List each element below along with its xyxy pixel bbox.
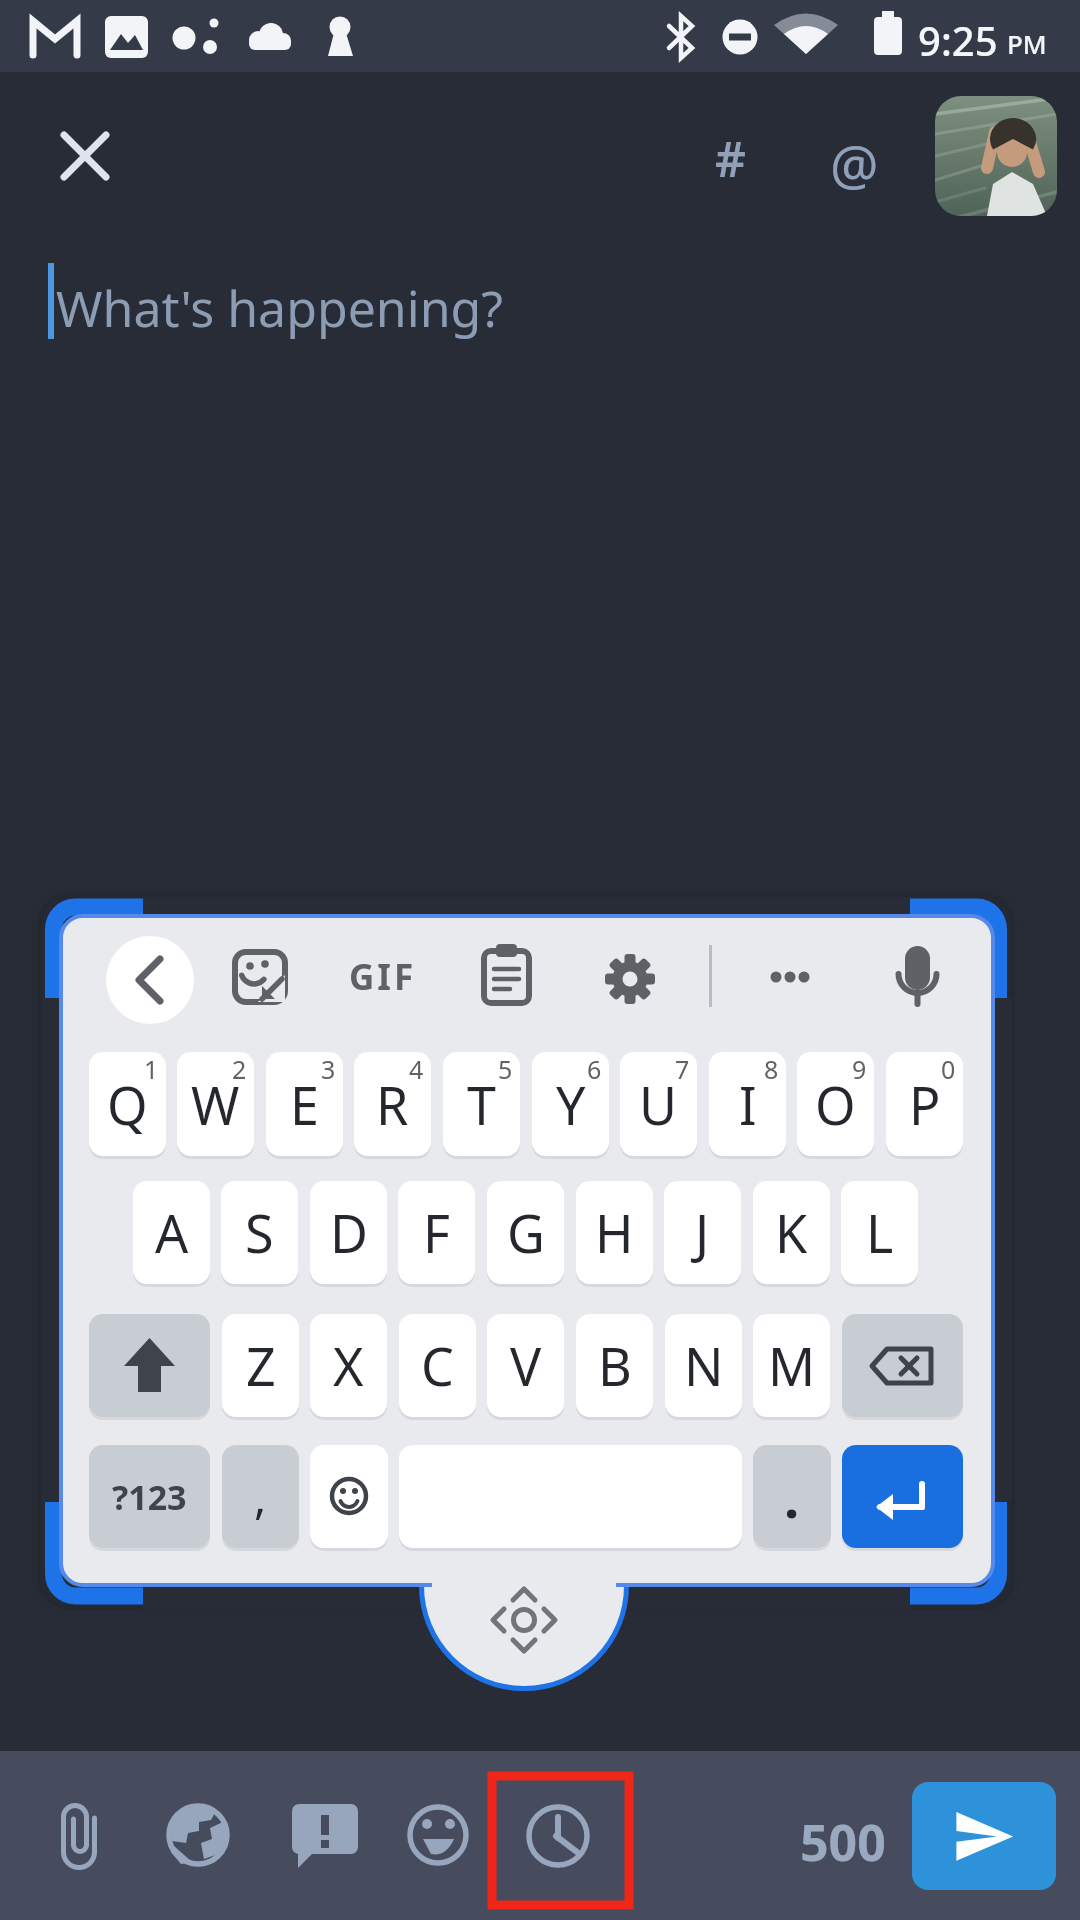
button[interactable]: GIF xyxy=(340,942,426,1012)
button[interactable]: Z xyxy=(222,1314,299,1417)
button[interactable] xyxy=(45,1800,115,1872)
staticText: D xyxy=(330,1197,368,1268)
staticText: S xyxy=(245,1197,274,1268)
button[interactable] xyxy=(523,1800,593,1872)
button[interactable]: O xyxy=(797,1052,874,1156)
button[interactable]: X xyxy=(310,1314,387,1417)
staticText: B xyxy=(598,1330,632,1401)
button[interactable]: J xyxy=(664,1181,741,1284)
button[interactable]: G xyxy=(487,1181,564,1284)
staticText: 4 xyxy=(409,1052,424,1086)
button[interactable] xyxy=(842,1445,963,1548)
button[interactable] xyxy=(595,942,665,1012)
staticText: What's happening? xyxy=(56,274,503,342)
button[interactable] xyxy=(882,942,952,1012)
staticText: X xyxy=(333,1330,364,1401)
button[interactable] xyxy=(163,1800,233,1872)
button[interactable]: B xyxy=(576,1314,653,1417)
button[interactable]: D xyxy=(310,1181,387,1284)
staticText: I xyxy=(739,1069,757,1140)
staticText: C xyxy=(421,1330,454,1401)
staticText: U xyxy=(639,1069,678,1140)
staticText: O xyxy=(815,1069,856,1140)
staticText: PM xyxy=(1007,26,1047,61)
button[interactable]: , xyxy=(222,1445,299,1548)
staticText: @ xyxy=(830,127,879,201)
button[interactable]: # xyxy=(700,122,762,194)
button[interactable]: U xyxy=(620,1052,697,1156)
button[interactable]: ?123 xyxy=(89,1445,210,1548)
button[interactable]: Y xyxy=(532,1052,609,1156)
button[interactable]: H xyxy=(576,1181,653,1284)
button[interactable]: M xyxy=(753,1314,830,1417)
staticText: , xyxy=(254,1465,267,1528)
staticText: Y xyxy=(556,1069,586,1140)
button[interactable] xyxy=(403,1800,473,1872)
staticText: T xyxy=(467,1069,496,1140)
staticText: E xyxy=(290,1069,319,1140)
button[interactable] xyxy=(225,942,295,1012)
staticText: R xyxy=(376,1069,409,1140)
button[interactable]: @ xyxy=(820,126,888,202)
button[interactable]: A xyxy=(133,1181,210,1284)
staticText: P xyxy=(909,1069,941,1140)
button[interactable]: S xyxy=(221,1181,298,1284)
button[interactable]: T xyxy=(443,1052,520,1156)
staticText: 9:25 xyxy=(918,13,998,67)
button[interactable]: W xyxy=(177,1052,254,1156)
staticText: J xyxy=(695,1197,710,1268)
button[interactable] xyxy=(842,1314,963,1417)
staticText: 0 xyxy=(941,1052,956,1086)
staticText: 7 xyxy=(675,1052,690,1086)
staticText: 6 xyxy=(587,1052,602,1086)
button[interactable] xyxy=(310,1445,388,1548)
button[interactable]: E xyxy=(266,1052,343,1156)
staticText: Q xyxy=(107,1069,148,1140)
button[interactable]: C xyxy=(399,1314,476,1417)
button[interactable]: L xyxy=(841,1181,918,1284)
button[interactable]: K xyxy=(753,1181,830,1284)
button[interactable] xyxy=(89,1314,210,1417)
button[interactable] xyxy=(912,1782,1056,1890)
staticText: 5 xyxy=(498,1052,513,1086)
staticText: K xyxy=(775,1197,808,1268)
staticText: 2 xyxy=(232,1052,247,1086)
staticText: 9 xyxy=(852,1052,867,1086)
staticText: H xyxy=(595,1197,634,1268)
button[interactable]: R xyxy=(354,1052,431,1156)
staticText: W xyxy=(191,1069,240,1140)
button[interactable]: V xyxy=(487,1314,564,1417)
staticText: ?123 xyxy=(112,1474,187,1520)
staticText: # xyxy=(715,126,747,191)
button[interactable]: N xyxy=(665,1314,742,1417)
staticText: F xyxy=(423,1197,450,1268)
button[interactable]: . xyxy=(753,1445,831,1548)
button[interactable] xyxy=(106,936,194,1024)
button[interactable] xyxy=(282,1800,352,1872)
button[interactable] xyxy=(755,942,825,1012)
staticText: L xyxy=(866,1197,894,1268)
staticText: Z xyxy=(246,1330,276,1401)
staticText: 3 xyxy=(321,1052,336,1086)
button[interactable]: F xyxy=(398,1181,475,1284)
button[interactable]: Q xyxy=(89,1052,166,1156)
staticText: N xyxy=(684,1330,724,1401)
staticText: V xyxy=(510,1330,542,1401)
button[interactable] xyxy=(935,96,1057,216)
staticText: G xyxy=(507,1197,545,1268)
staticText: 1 xyxy=(144,1052,159,1086)
staticText: 500 xyxy=(800,1808,886,1876)
staticText: A xyxy=(155,1197,189,1268)
staticText: M xyxy=(768,1330,816,1401)
staticText: . xyxy=(784,1460,800,1534)
button[interactable] xyxy=(48,119,122,193)
staticText: 8 xyxy=(764,1052,779,1086)
button[interactable] xyxy=(471,942,541,1012)
button[interactable]: P xyxy=(886,1052,963,1156)
button[interactable]: I xyxy=(709,1052,786,1156)
staticText: GIF xyxy=(349,953,417,1001)
